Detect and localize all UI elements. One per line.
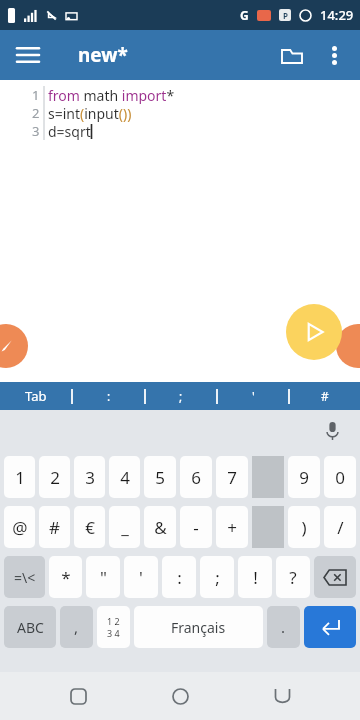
staticText: # bbox=[321, 388, 329, 404]
button[interactable]: 3 bbox=[74, 456, 105, 498]
staticText: , bbox=[74, 617, 79, 637]
staticText: @ bbox=[12, 516, 28, 539]
staticText: € bbox=[85, 516, 95, 539]
staticText: . bbox=[281, 617, 286, 637]
button[interactable]: : bbox=[162, 556, 196, 598]
button[interactable]: , bbox=[60, 606, 93, 648]
staticText: 1 bbox=[32, 86, 40, 104]
staticText: Français bbox=[171, 618, 226, 637]
button[interactable]: ? bbox=[276, 556, 310, 598]
button[interactable]: Open folder bbox=[270, 33, 314, 77]
staticText: ' bbox=[139, 566, 143, 589]
staticText: 9 bbox=[299, 466, 309, 489]
staticText: 3 bbox=[85, 466, 95, 489]
button[interactable]: _ bbox=[109, 506, 140, 548]
button[interactable]: / bbox=[324, 506, 356, 548]
staticText: / bbox=[337, 516, 344, 539]
button[interactable]: More options bbox=[314, 35, 354, 75]
button[interactable]: Tab bbox=[0, 382, 71, 410]
button[interactable]: # bbox=[290, 382, 360, 410]
staticText: ' bbox=[252, 388, 255, 404]
button[interactable]: * bbox=[49, 556, 82, 598]
button[interactable]: 7 bbox=[216, 456, 248, 498]
button[interactable]: Home bbox=[156, 672, 204, 720]
button[interactable]: 0 bbox=[324, 456, 356, 498]
button[interactable]: 4 bbox=[109, 456, 140, 498]
button[interactable]: Run bbox=[286, 304, 342, 360]
button[interactable]: ABC bbox=[4, 606, 56, 648]
staticText: ! bbox=[253, 566, 258, 589]
button[interactable]: ! bbox=[238, 556, 272, 598]
button[interactable]: Français bbox=[134, 606, 263, 648]
button[interactable]: Voice input bbox=[318, 417, 346, 445]
staticText: 3 bbox=[32, 122, 40, 140]
button[interactable]: ' bbox=[218, 382, 288, 410]
staticText: ; bbox=[179, 388, 183, 404]
button[interactable]: : bbox=[73, 382, 144, 410]
staticText: 2 bbox=[50, 466, 60, 489]
staticText: # bbox=[49, 516, 60, 539]
staticText: ; bbox=[215, 566, 220, 589]
button[interactable]: . bbox=[267, 606, 300, 648]
button[interactable]: Back bbox=[258, 672, 306, 720]
button[interactable]: 1 bbox=[4, 456, 35, 498]
staticText: 5 bbox=[155, 466, 165, 489]
staticText: * bbox=[61, 566, 71, 589]
staticText: 3 4 bbox=[107, 627, 120, 639]
staticText: 6 bbox=[191, 466, 201, 489]
button[interactable]: =\< bbox=[4, 556, 45, 598]
staticText: 7 bbox=[227, 466, 237, 489]
staticText: from math import* bbox=[48, 86, 175, 104]
button[interactable]: 5 bbox=[144, 456, 176, 498]
button[interactable]: + bbox=[216, 506, 248, 548]
button[interactable]: - bbox=[180, 506, 212, 548]
button[interactable]: Edit bbox=[0, 324, 28, 368]
staticText: : bbox=[107, 388, 111, 404]
staticText: - bbox=[193, 516, 199, 539]
button[interactable]: # bbox=[39, 506, 70, 548]
staticText: " bbox=[100, 566, 107, 589]
button[interactable]: € bbox=[74, 506, 105, 548]
staticText: new* bbox=[78, 42, 128, 68]
staticText: & bbox=[154, 516, 167, 539]
button[interactable]: ; bbox=[146, 382, 216, 410]
button[interactable]: ; bbox=[200, 556, 234, 598]
button[interactable]: ) bbox=[288, 506, 320, 548]
button[interactable]: Recent apps bbox=[54, 672, 102, 720]
button[interactable]: Enter bbox=[304, 606, 356, 648]
button[interactable]: Menu bbox=[8, 35, 48, 75]
staticText: Tab bbox=[25, 387, 47, 405]
staticText: _ bbox=[121, 516, 129, 539]
staticText: P bbox=[283, 10, 288, 21]
staticText: 1 2 bbox=[107, 615, 120, 627]
staticText: 0 bbox=[335, 466, 345, 489]
button[interactable]: 6 bbox=[180, 456, 212, 498]
button[interactable]: 2 bbox=[39, 456, 70, 498]
staticText: 2 bbox=[32, 104, 40, 122]
button[interactable]: Numbers bbox=[97, 606, 130, 648]
staticText: 1 bbox=[15, 466, 25, 489]
button[interactable]: " bbox=[86, 556, 120, 598]
staticText: s=int(input()) bbox=[48, 104, 132, 122]
staticText: ABC bbox=[17, 618, 44, 637]
staticText: ) bbox=[301, 516, 307, 539]
button[interactable]: Backspace bbox=[314, 556, 356, 598]
staticText: 14:29 bbox=[320, 6, 354, 24]
staticText: d=sqrt bbox=[48, 122, 91, 140]
staticText: + bbox=[227, 516, 237, 539]
button[interactable]: More actions bbox=[336, 324, 360, 368]
staticText: =\< bbox=[14, 568, 36, 587]
button[interactable]: @ bbox=[4, 506, 35, 548]
button[interactable]: 9 bbox=[288, 456, 320, 498]
staticText: ? bbox=[289, 566, 297, 589]
button[interactable]: & bbox=[144, 506, 176, 548]
staticText: : bbox=[177, 566, 182, 589]
staticText: 4 bbox=[120, 466, 130, 489]
staticText: G bbox=[240, 7, 249, 23]
button[interactable]: ' bbox=[124, 556, 158, 598]
